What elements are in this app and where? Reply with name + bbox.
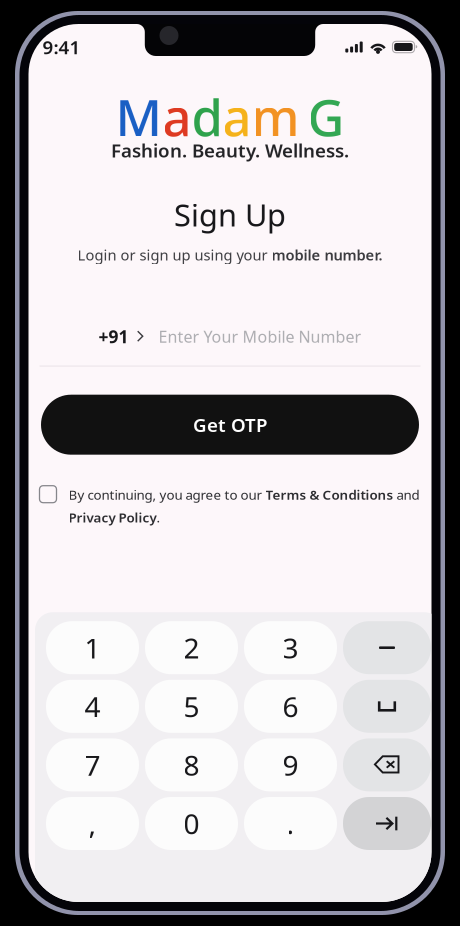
staticText: 8 <box>183 746 199 783</box>
button[interactable]: Next <box>343 797 431 850</box>
button[interactable] <box>46 680 139 733</box>
staticText: By continuing, you agree to our Terms & … <box>68 486 419 503</box>
button[interactable] <box>244 797 337 850</box>
staticText: 0 <box>183 805 199 842</box>
button[interactable] <box>244 738 337 791</box>
staticText: Privacy Policy. <box>68 508 160 526</box>
staticText: +91 <box>98 325 128 348</box>
staticText: Enter Your Mobile Number <box>158 326 361 347</box>
staticText: 2 <box>183 629 199 666</box>
button[interactable]: Dash <box>343 621 431 674</box>
button[interactable]: Delete <box>343 738 431 791</box>
staticText: 1 <box>84 629 100 666</box>
staticText: . <box>286 805 294 842</box>
button[interactable] <box>244 680 337 733</box>
staticText: , <box>88 805 96 842</box>
staticText: a <box>222 83 251 150</box>
staticText: Fashion. Beauty. Wellness. <box>111 138 349 163</box>
button[interactable] <box>244 621 337 674</box>
staticText: m <box>251 83 299 150</box>
button[interactable] <box>145 621 238 674</box>
button[interactable] <box>46 621 139 674</box>
staticText: 4 <box>84 688 100 725</box>
button[interactable]: Get OTP <box>41 395 419 455</box>
button[interactable] <box>145 797 238 850</box>
staticText: 3 <box>282 629 298 666</box>
staticText: 7 <box>84 746 100 783</box>
button[interactable] <box>46 738 139 791</box>
staticText: Get OTP <box>193 412 267 437</box>
staticText: d <box>191 83 222 150</box>
button[interactable] <box>145 680 238 733</box>
staticText <box>299 83 307 150</box>
staticText: G <box>307 83 344 150</box>
staticText: 6 <box>282 688 298 725</box>
button[interactable] <box>145 738 238 791</box>
staticText: 9:41 <box>42 35 80 59</box>
staticText: M <box>115 83 162 150</box>
staticText: Login or sign up using your mobile numbe… <box>77 245 382 264</box>
button[interactable]: Accept terms and conditions <box>39 486 56 503</box>
button[interactable]: Space <box>343 680 431 733</box>
staticText: Sign Up <box>174 194 286 235</box>
staticText: a <box>162 83 191 150</box>
staticText: 5 <box>183 688 199 725</box>
button[interactable] <box>46 797 139 850</box>
staticText: 9 <box>282 746 298 783</box>
